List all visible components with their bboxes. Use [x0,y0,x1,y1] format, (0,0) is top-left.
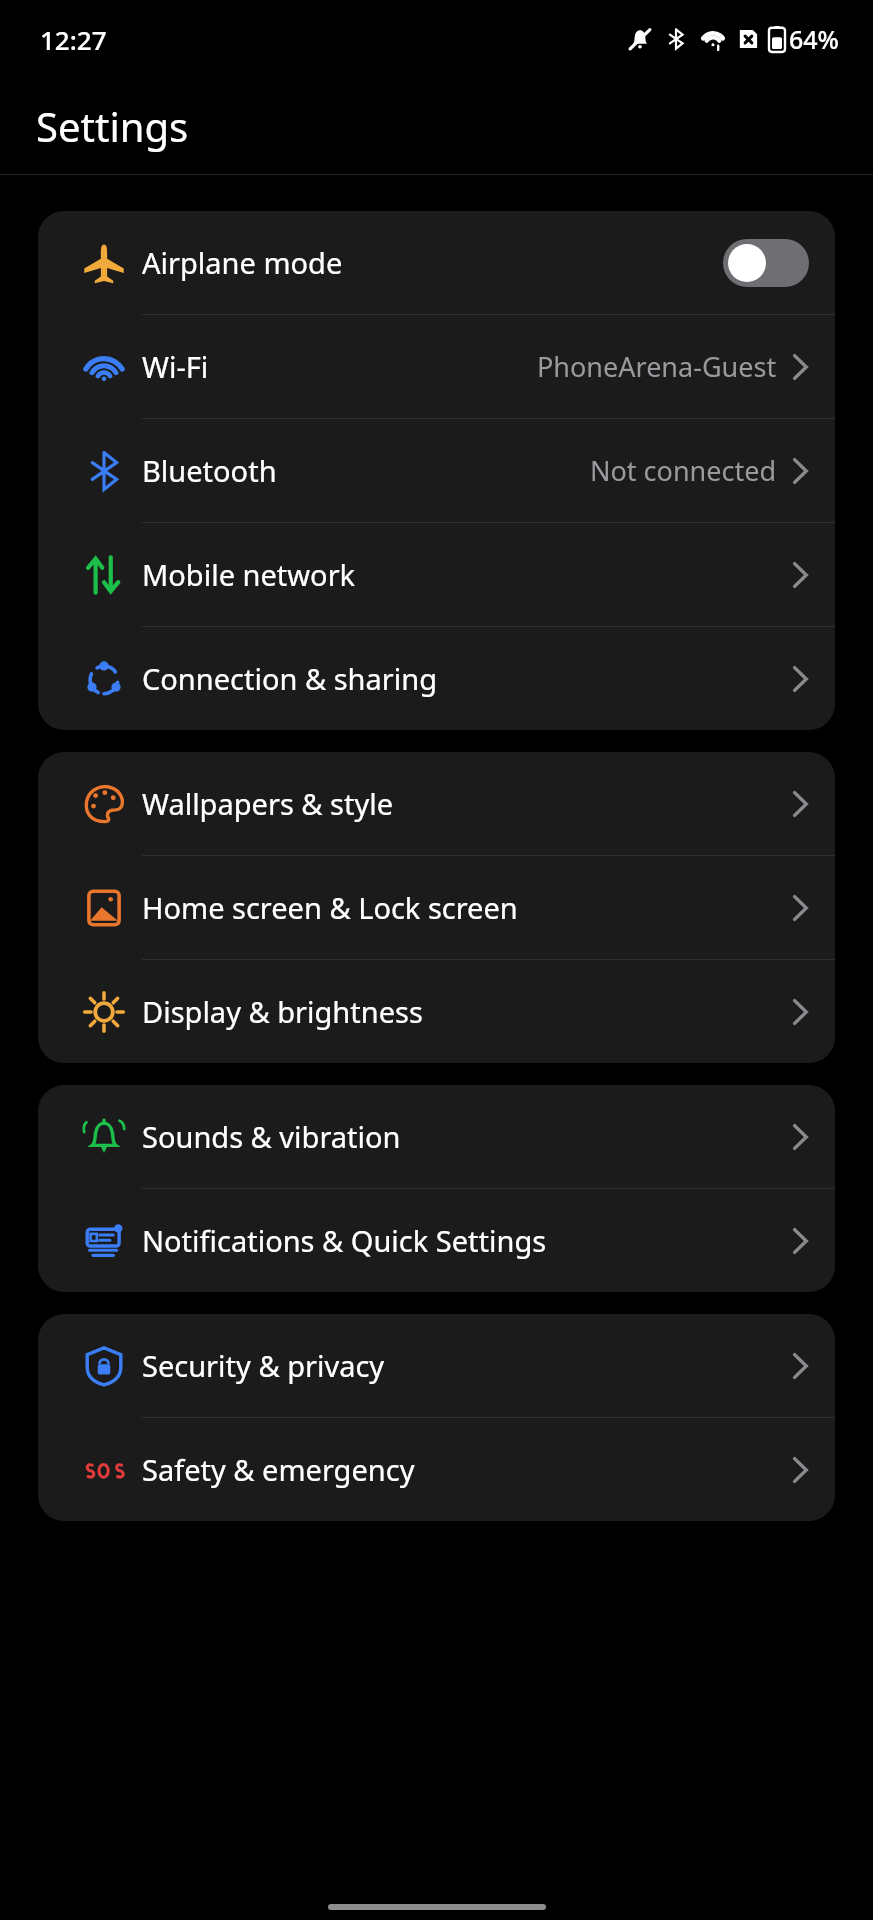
staticText: Wi-Fi [142,347,209,386]
button[interactable]: Safety & emergency [38,1418,835,1521]
staticText: Mobile network [142,555,356,594]
button[interactable]: Security & privacy [38,1314,835,1418]
button[interactable]: Wi-Fi [38,315,835,419]
button[interactable]: Notifications & Quick Settings [38,1189,835,1292]
staticText: Wallpapers & style [142,784,394,823]
staticText: Display & brightness [142,992,423,1031]
staticText: Not connected [590,452,777,489]
staticText: 64% [789,22,839,56]
button[interactable]: Airplane mode [38,211,835,315]
button[interactable]: Display & brightness [38,960,835,1063]
button[interactable]: Airplane mode toggle [723,239,809,287]
staticText: Airplane mode [142,243,343,282]
button[interactable]: Bluetooth [38,419,835,523]
staticText: Sounds & vibration [142,1117,401,1156]
staticText: PhoneArena-Guest [537,348,777,385]
staticText: Settings [36,99,189,153]
staticText: Security & privacy [142,1346,385,1385]
staticText: Safety & emergency [142,1450,415,1489]
staticText: Notifications & Quick Settings [142,1221,547,1260]
button[interactable]: Sounds & vibration [38,1085,835,1189]
button[interactable]: Connection & sharing [38,627,835,730]
staticText: Connection & sharing [142,659,438,698]
button[interactable]: Wallpapers & style [38,752,835,856]
staticText: 12:27 [40,22,107,57]
staticText: Bluetooth [142,451,277,490]
button[interactable]: Mobile network [38,523,835,627]
staticText: Home screen & Lock screen [142,888,518,927]
button[interactable]: Home screen & Lock screen [38,856,835,960]
